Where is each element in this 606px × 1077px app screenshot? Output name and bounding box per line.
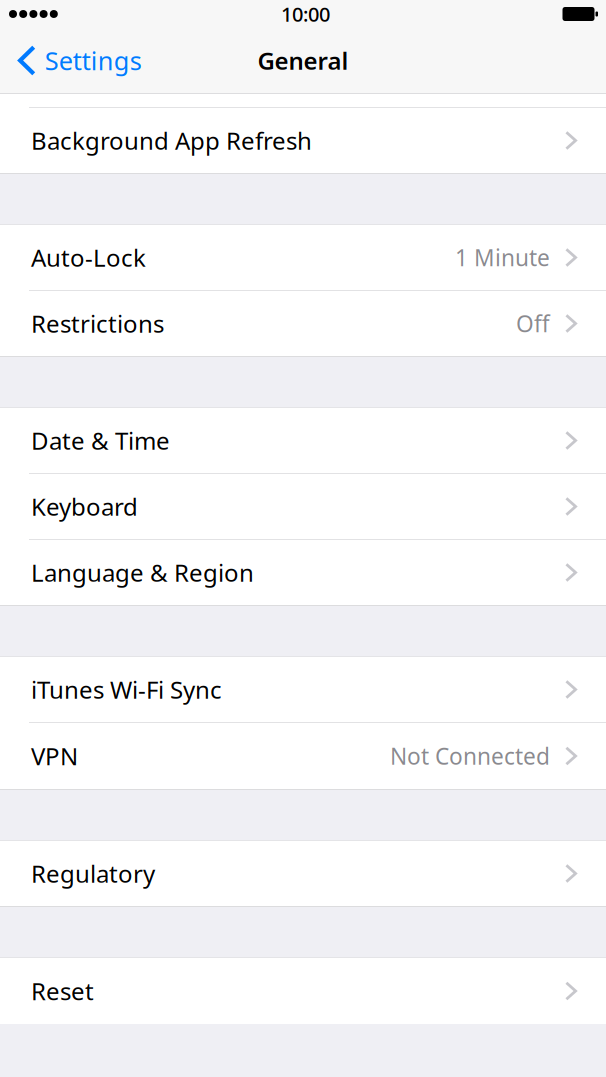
staticText: Language & Region [31, 557, 254, 588]
button[interactable]: Settings [0, 36, 142, 85]
button[interactable]: Date & Time [0, 408, 606, 473]
button[interactable]: Auto-Lock [0, 225, 606, 290]
staticText: Settings [45, 44, 142, 77]
staticText: General [257, 45, 348, 76]
staticText: Restrictions [31, 308, 164, 339]
button[interactable]: Reset [0, 958, 606, 1024]
button[interactable]: Language & Region [0, 539, 606, 605]
staticText: VPN [31, 740, 78, 772]
staticText: Not Connected [390, 741, 550, 771]
button[interactable]: Regulatory [0, 841, 606, 906]
button[interactable]: Background App Refresh [0, 107, 606, 173]
staticText: Reset [31, 975, 94, 1007]
button[interactable]: Restrictions [0, 290, 606, 356]
staticText: Auto-Lock [31, 242, 146, 273]
button[interactable]: VPN [0, 722, 606, 789]
button[interactable]: iTunes Wi-Fi Sync [0, 657, 606, 722]
staticText: Off [516, 308, 550, 338]
staticText: 1 Minute [455, 242, 550, 272]
button[interactable]: Keyboard [0, 473, 606, 539]
staticText: Date & Time [31, 425, 170, 456]
staticText: Background App Refresh [31, 125, 312, 156]
staticText: Keyboard [31, 491, 138, 522]
staticText: Regulatory [31, 858, 155, 889]
staticText: iTunes Wi-Fi Sync [31, 674, 222, 705]
staticText: 10:00 [281, 1, 330, 27]
